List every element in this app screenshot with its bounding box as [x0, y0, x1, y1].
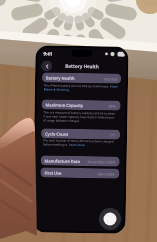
staticText: 9:41	[43, 50, 52, 56]
staticText: Learn more.	[69, 143, 86, 147]
staticText: Manufacture Date	[45, 158, 81, 164]
button[interactable]: Maximum Capacity	[41, 99, 121, 111]
staticText: This iPhone battery can not fully be mai…	[44, 83, 110, 89]
button[interactable]: Manufacture Date	[40, 155, 120, 167]
staticText: April 2026	[97, 171, 115, 177]
staticText: The total number of times iPhone has bee…	[43, 138, 114, 143]
staticText: before needing to	[43, 142, 69, 147]
button[interactable]: First Use	[40, 167, 119, 179]
staticText: Cycle Count	[45, 131, 69, 137]
staticText: 88%	[108, 103, 117, 109]
staticText: Before & Servicing.	[44, 87, 70, 92]
button[interactable]: Back	[41, 60, 52, 71]
staticText: Battery Health	[46, 75, 75, 81]
staticText: Maximum Capacity	[46, 102, 84, 108]
button[interactable]: Battery Health	[42, 72, 121, 84]
staticText: it was new. Lower capacity may result in…	[43, 114, 115, 120]
staticText: Normal	[104, 76, 117, 82]
staticText: This is a measure of battery capacity re…	[43, 110, 115, 116]
button[interactable]: Cycle Count	[41, 128, 120, 140]
staticText: Battery Health	[65, 63, 99, 69]
staticText: First Use	[44, 170, 61, 176]
staticText: November 2024	[88, 159, 116, 165]
staticText: 177	[109, 132, 116, 138]
staticText: Know	[110, 84, 118, 89]
staticText: of usage between charges.	[43, 118, 80, 123]
